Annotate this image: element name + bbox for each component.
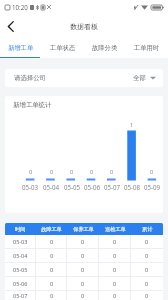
button[interactable]: 工单用时 [126, 38, 168, 58]
staticText: 0 [50, 168, 54, 175]
staticText: 05-06 [13, 280, 28, 287]
button[interactable]: 请选择公司 [5, 69, 163, 87]
staticText: 工单状态 [50, 44, 76, 52]
staticText: 数据看板 [70, 22, 98, 31]
staticText: 故障工单 [41, 226, 62, 233]
button[interactable]: 05-03 [5, 235, 163, 248]
staticText: 0 [81, 266, 85, 273]
staticText: 新增工单 [8, 44, 34, 52]
staticText: 0 [50, 252, 54, 259]
staticText: 0 [90, 168, 94, 175]
staticText: 0 [50, 266, 54, 273]
button[interactable]: 工单状态 [42, 38, 84, 58]
button[interactable]: 05-05 [5, 263, 163, 276]
staticText: 1 [130, 121, 134, 128]
button[interactable]: 05-07 [5, 291, 163, 300]
staticText: 0 [81, 252, 85, 259]
staticText: 0 [145, 292, 149, 299]
staticText: 05-06 [84, 183, 101, 191]
staticText: 0 [81, 292, 85, 299]
staticText: 0 [145, 280, 149, 287]
staticText: 05-03 [13, 238, 28, 245]
staticText: 0 [145, 238, 149, 245]
button[interactable]: 新增工单 [0, 38, 42, 58]
staticText: 0 [113, 280, 117, 287]
staticText: 10:20 [12, 3, 28, 11]
staticText: 全部 [133, 74, 146, 82]
staticText: 0 [113, 252, 117, 259]
staticText: 0 [50, 292, 54, 299]
staticText: 0 [110, 168, 114, 175]
staticText: 05-05 [64, 183, 81, 191]
staticText: 0 [29, 168, 33, 175]
staticText: 0 [150, 168, 154, 175]
staticText: 05-04 [13, 252, 28, 259]
staticText: 05-08 [124, 183, 141, 191]
button[interactable]: 05-04 [5, 249, 163, 262]
staticText: 新增工单统计 [13, 101, 52, 109]
staticText: 05-07 [13, 292, 28, 299]
staticText: 0 [81, 280, 85, 287]
staticText: 0 [145, 266, 149, 273]
staticText: 0 [50, 280, 54, 287]
staticText: 0 [145, 252, 149, 259]
button[interactable]: 故障分类 [84, 38, 126, 58]
staticText: 请选择公司 [14, 74, 46, 82]
staticText: 故障分类 [92, 44, 118, 52]
button[interactable]: Back [0, 15, 22, 37]
staticText: 0 [50, 238, 54, 245]
staticText: 工单用时 [134, 44, 160, 52]
staticText: 保养工单 [73, 226, 94, 233]
staticText: 0 [113, 292, 117, 299]
staticText: 05-07 [104, 183, 121, 191]
staticText: 0 [81, 238, 85, 245]
staticText: 时间 [15, 226, 26, 233]
staticText: 05-03 [22, 183, 39, 191]
staticText: 0 [113, 266, 117, 273]
staticText: 05-05 [13, 266, 28, 273]
staticText: 累计 [142, 226, 153, 233]
staticText: 05-04 [43, 183, 60, 191]
staticText: 0 [70, 168, 74, 175]
button[interactable]: 05-06 [5, 277, 163, 290]
staticText: 05-09 [144, 183, 161, 191]
staticText: 0 [113, 238, 117, 245]
staticText: 巡检工单 [105, 226, 126, 233]
